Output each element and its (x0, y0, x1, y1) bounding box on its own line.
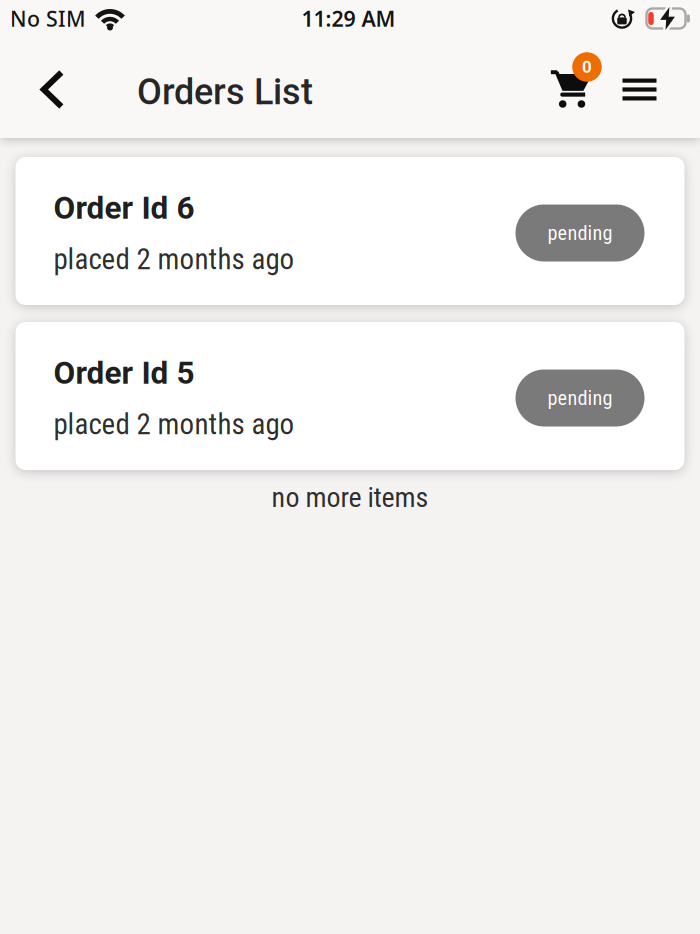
staticText: no more items (271, 481, 428, 514)
button[interactable]: Menu (610, 66, 668, 112)
button[interactable]: Order Id 6 (15, 157, 684, 305)
staticText: Orders List (137, 71, 313, 113)
staticText: pending (547, 386, 612, 410)
staticText: pending (547, 221, 612, 245)
staticText: Order Id 6 (53, 190, 194, 226)
button[interactable]: Back (28, 57, 77, 121)
staticText: 0 (582, 57, 592, 77)
staticText: placed 2 months ago (53, 242, 294, 276)
staticText: No SIM (10, 4, 86, 33)
button[interactable]: Cart (548, 52, 604, 109)
staticText: 11:29 AM (301, 4, 395, 33)
button[interactable]: pending (515, 367, 644, 424)
staticText: placed 2 months ago (53, 407, 294, 441)
button[interactable]: pending (515, 202, 644, 259)
button[interactable]: Order Id 5 (15, 322, 684, 470)
staticText: Order Id 5 (53, 355, 194, 391)
